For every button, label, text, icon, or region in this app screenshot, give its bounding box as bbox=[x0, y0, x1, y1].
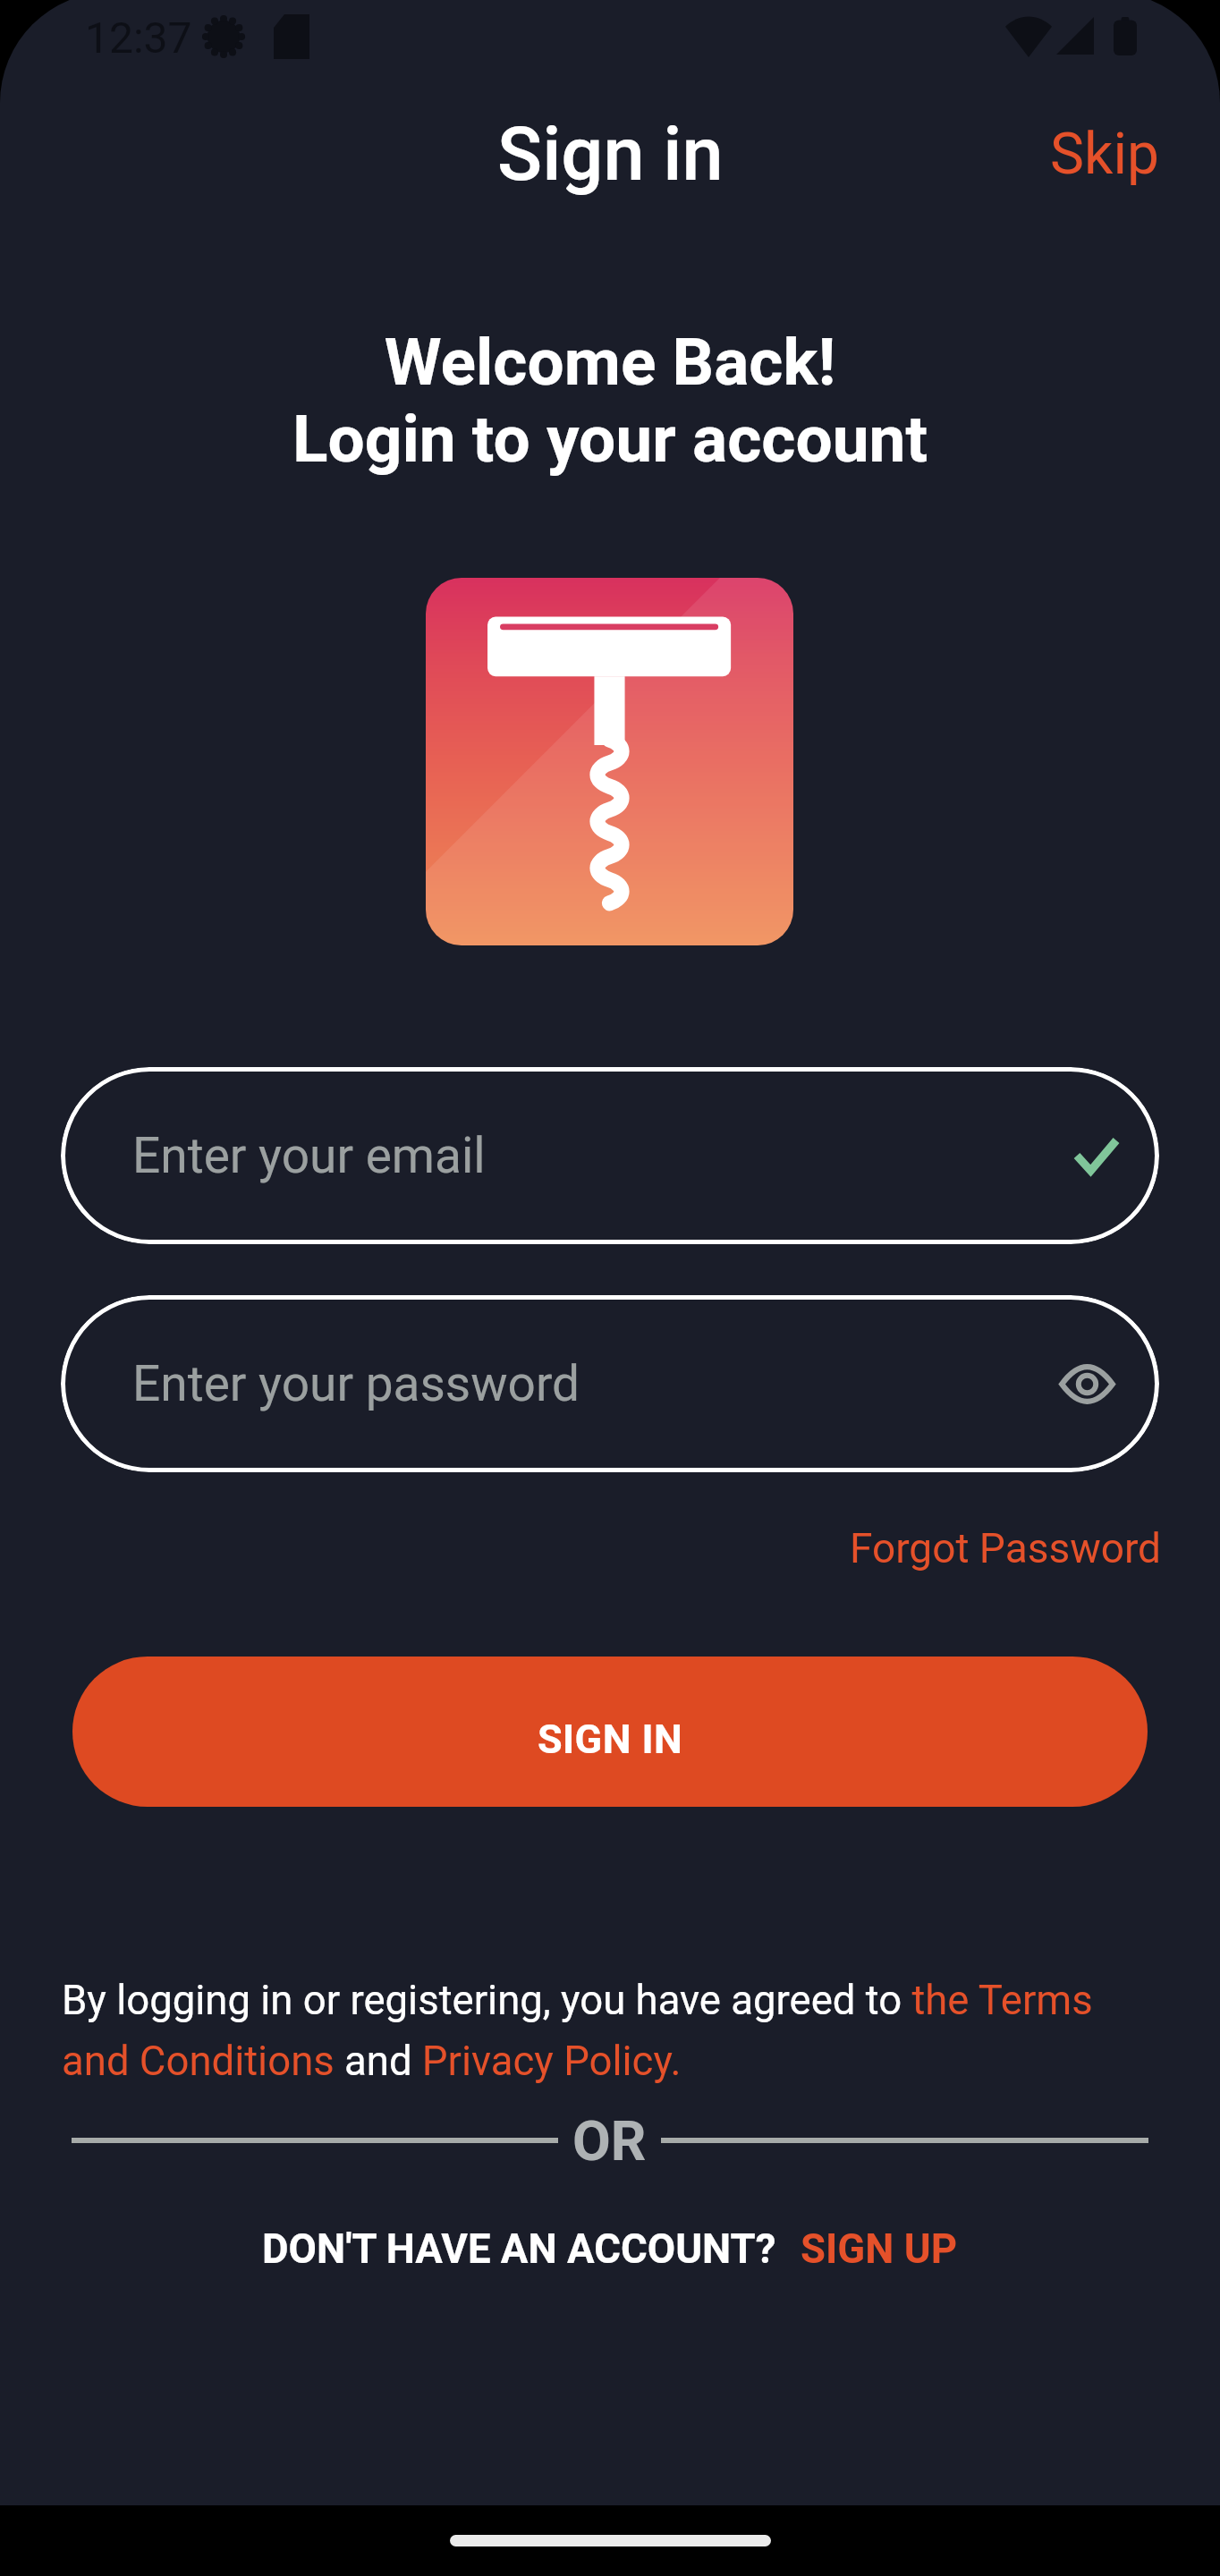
staticText: OR bbox=[572, 2108, 647, 2173]
button[interactable]: Forgot Password bbox=[850, 1524, 1162, 1572]
staticText: Sign in bbox=[497, 111, 724, 198]
staticText: Welcome Back! Login to your account bbox=[0, 324, 1220, 478]
staticText: SIGN UP bbox=[801, 2225, 958, 2273]
button[interactable]: SIGN UP bbox=[801, 2225, 958, 2273]
staticText: Skip bbox=[1050, 121, 1159, 188]
button[interactable]: Enter your email bbox=[61, 1067, 1159, 1244]
button[interactable]: Skip bbox=[1050, 121, 1159, 188]
staticText: Forgot Password bbox=[850, 1524, 1162, 1572]
staticText: 12:37 bbox=[85, 13, 192, 63]
staticText: Enter your email bbox=[132, 1127, 486, 1184]
staticText: DON'T HAVE AN ACCOUNT? bbox=[262, 2225, 776, 2273]
button[interactable]: Enter your password bbox=[61, 1295, 1159, 1472]
staticText: Enter your password bbox=[132, 1355, 580, 1412]
button[interactable]: Show password bbox=[1059, 1364, 1115, 1404]
staticText: By logging in or registering, you have a… bbox=[62, 1977, 1160, 2085]
other: Email valid bbox=[1077, 1140, 1116, 1171]
staticText: SIGN IN bbox=[538, 1716, 683, 1763]
button[interactable]: SIGN IN bbox=[72, 1657, 1148, 1807]
